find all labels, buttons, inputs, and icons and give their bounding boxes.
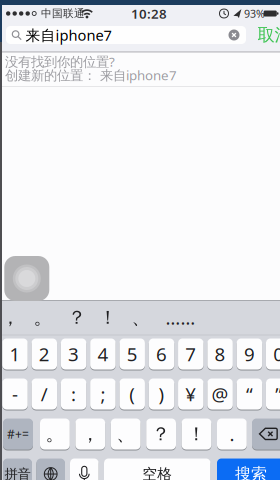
button[interactable]: ; bbox=[90, 378, 116, 410]
staticText: ” bbox=[275, 382, 280, 406]
staticText: 3 bbox=[68, 342, 79, 366]
staticText: 10:28 bbox=[131, 5, 167, 22]
button[interactable]: 7 bbox=[178, 338, 204, 370]
staticText: “ bbox=[246, 382, 253, 406]
button[interactable]: 、 bbox=[131, 306, 150, 329]
button[interactable]: 4 bbox=[90, 338, 116, 370]
staticText: 2 bbox=[39, 342, 50, 366]
button[interactable]: ， bbox=[1, 306, 20, 329]
staticText: : bbox=[71, 382, 76, 406]
button[interactable]: ！ bbox=[98, 306, 117, 329]
button[interactable]: ？ bbox=[67, 306, 86, 329]
button[interactable]: ” bbox=[266, 378, 280, 410]
staticText: . bbox=[229, 422, 234, 446]
staticText: 。 bbox=[45, 422, 64, 445]
staticText: 4 bbox=[97, 342, 108, 366]
staticText: 没有找到你的位置? bbox=[5, 53, 115, 70]
button[interactable]: ！ bbox=[182, 418, 211, 450]
button[interactable]: 9 bbox=[237, 338, 262, 370]
staticText: ， bbox=[1, 306, 20, 329]
staticText: 93% bbox=[244, 6, 265, 21]
staticText: 创建新的位置： 来自iphone7 bbox=[5, 66, 177, 84]
button[interactable]: / bbox=[31, 378, 57, 410]
button[interactable]: ( bbox=[119, 378, 145, 410]
button[interactable]: #+= bbox=[3, 418, 33, 450]
button[interactable]: . bbox=[217, 418, 247, 450]
staticText: / bbox=[41, 382, 48, 406]
button[interactable]: Clear text bbox=[228, 29, 239, 40]
button[interactable]: …… bbox=[165, 305, 195, 330]
staticText: ！ bbox=[187, 422, 206, 445]
button[interactable]: 创建新的位置： 来自iphone7 bbox=[0, 0, 280, 480]
staticText: 空格 bbox=[142, 465, 172, 480]
staticText: ， bbox=[81, 422, 100, 445]
staticText: 7 bbox=[185, 342, 196, 366]
button[interactable]: 2 bbox=[31, 338, 57, 370]
button[interactable]: 0 bbox=[266, 338, 280, 370]
button[interactable]: 3 bbox=[61, 338, 86, 370]
button[interactable]: 。 bbox=[40, 418, 70, 450]
button[interactable]: 取消 bbox=[0, 0, 280, 480]
staticText: 9 bbox=[244, 342, 255, 366]
button[interactable]: ¥ bbox=[178, 378, 204, 410]
button[interactable]: - bbox=[2, 378, 28, 410]
staticText: 来自iphone7 bbox=[25, 25, 111, 45]
button[interactable]: Search field bbox=[6, 26, 246, 44]
staticText: 取消 bbox=[257, 24, 280, 46]
button[interactable]: : bbox=[61, 378, 86, 410]
button[interactable]: 8 bbox=[207, 338, 233, 370]
staticText: 、 bbox=[116, 422, 135, 445]
staticText: 。 bbox=[33, 306, 52, 329]
staticText: #+= bbox=[7, 426, 29, 442]
staticText: 拼音 bbox=[4, 466, 30, 480]
staticText: 6 bbox=[156, 342, 167, 366]
button[interactable]: Next keyboard bbox=[36, 458, 65, 480]
button[interactable]: 6 bbox=[149, 338, 174, 370]
button[interactable]: Delete bbox=[252, 418, 280, 450]
button[interactable]: AssistiveTouch bbox=[4, 256, 49, 301]
staticText: 0 bbox=[273, 342, 280, 366]
staticText: ？ bbox=[152, 422, 171, 445]
button[interactable]: Dictation bbox=[70, 458, 99, 480]
staticText: @ bbox=[212, 382, 229, 406]
button[interactable]: 5 bbox=[119, 338, 145, 370]
button[interactable]: @ bbox=[207, 378, 233, 410]
button[interactable]: 1 bbox=[2, 338, 28, 370]
button[interactable]: “ bbox=[237, 378, 262, 410]
button[interactable]: ？ bbox=[146, 418, 176, 450]
staticText: - bbox=[12, 382, 18, 406]
button[interactable]: ， bbox=[75, 418, 105, 450]
staticText: …… bbox=[165, 305, 195, 330]
staticText: ？ bbox=[67, 306, 86, 329]
button[interactable]: 拼音 bbox=[3, 458, 32, 480]
button[interactable]: 、 bbox=[111, 418, 141, 450]
button[interactable]: 。 bbox=[33, 306, 52, 329]
staticText: 8 bbox=[215, 342, 226, 366]
staticText: 搜索 bbox=[235, 464, 267, 480]
button[interactable]: 空格 bbox=[104, 458, 210, 480]
button[interactable]: 搜索 bbox=[217, 458, 280, 480]
staticText: ) bbox=[158, 382, 164, 406]
button[interactable]: ) bbox=[149, 378, 174, 410]
staticText: ( bbox=[129, 382, 135, 406]
staticText: ¥ bbox=[185, 382, 196, 406]
staticText: ！ bbox=[98, 306, 117, 329]
staticText: 1 bbox=[9, 342, 20, 366]
staticText: 、 bbox=[131, 306, 150, 329]
staticText: 5 bbox=[127, 342, 138, 366]
staticText: 中国联通 bbox=[41, 7, 85, 20]
staticText: ; bbox=[100, 382, 105, 406]
